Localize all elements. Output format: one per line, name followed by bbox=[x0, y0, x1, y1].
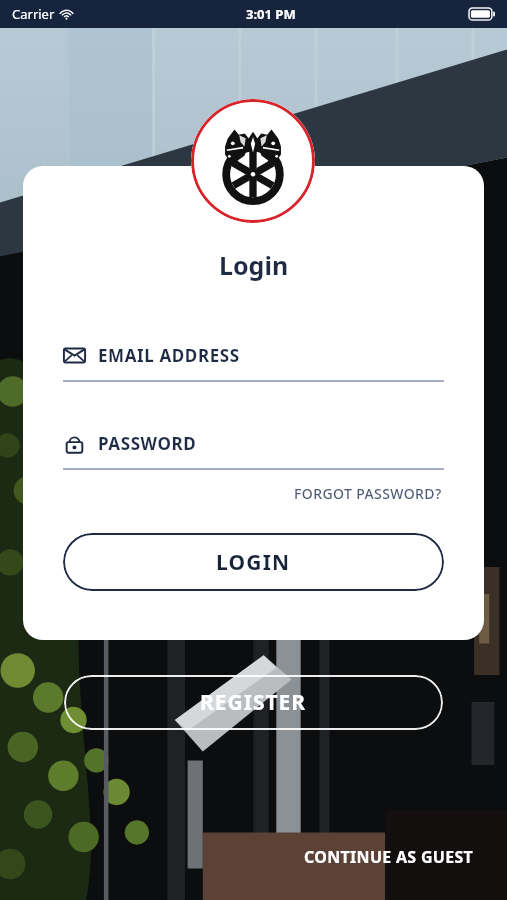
button[interactable]: CONTINUE AS GUEST bbox=[301, 842, 477, 872]
button[interactable]: LOGIN bbox=[63, 533, 444, 591]
button[interactable]: FORGOT PASSWORD? bbox=[292, 481, 444, 506]
staticText: Carrier bbox=[12, 5, 55, 23]
staticText: CONTINUE AS GUEST bbox=[304, 846, 474, 868]
button[interactable]: EMAIL ADDRESS bbox=[63, 344, 444, 382]
staticText: REGISTER bbox=[200, 688, 307, 717]
staticText: EMAIL ADDRESS bbox=[98, 344, 240, 367]
staticText: 3:01 PM bbox=[246, 5, 296, 23]
button[interactable]: PASSWORD bbox=[63, 432, 444, 470]
staticText: LOGIN bbox=[216, 548, 291, 577]
staticText: FORGOT PASSWORD? bbox=[294, 484, 442, 503]
staticText: Login bbox=[219, 248, 289, 282]
staticText: PASSWORD bbox=[98, 432, 197, 455]
button[interactable]: REGISTER bbox=[64, 675, 443, 730]
